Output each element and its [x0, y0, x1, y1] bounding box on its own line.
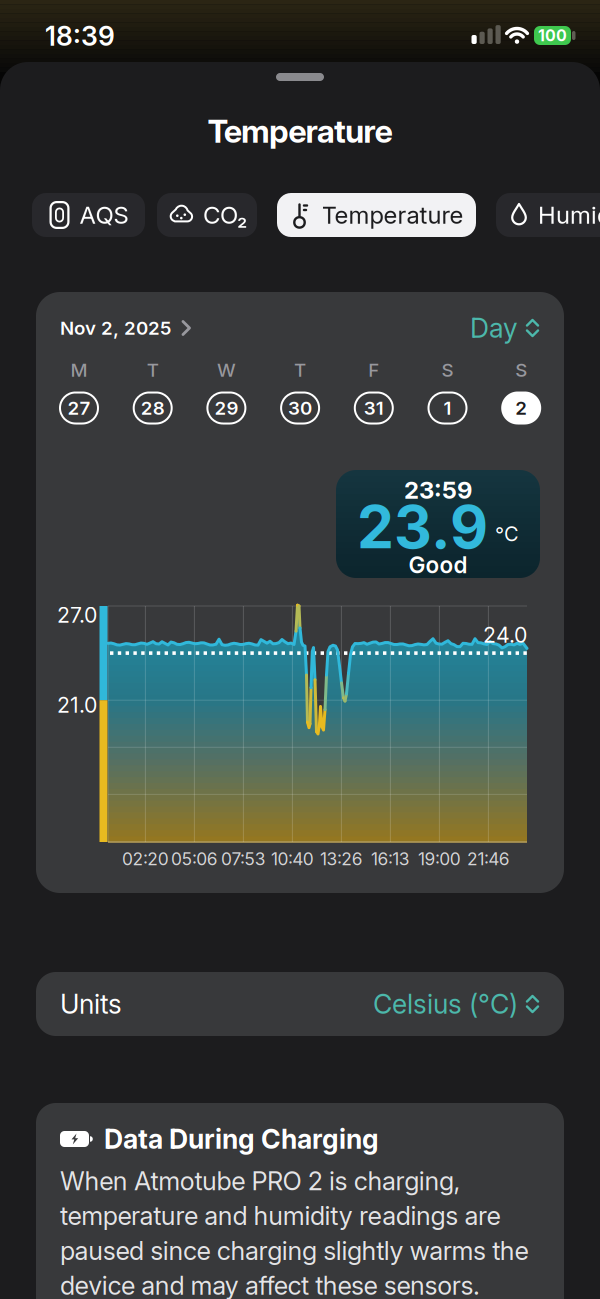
- staticText: 13:26: [320, 849, 363, 869]
- button[interactable]: AQS: [32, 193, 145, 237]
- button[interactable]: Nov 2, 2025: [60, 308, 192, 348]
- staticText: temperature and humidity readings are: [60, 1201, 501, 1231]
- staticText: T: [294, 359, 306, 381]
- staticText: 19:00: [418, 849, 461, 869]
- staticText: When Atmotube PRO 2 is charging,: [60, 1166, 461, 1196]
- staticText: 23:59: [404, 476, 472, 504]
- staticText: T: [147, 359, 159, 381]
- staticText: 10:40: [271, 849, 314, 869]
- staticText: paused since charging slightly warms the: [60, 1236, 528, 1266]
- staticText: 02:20: [122, 849, 169, 869]
- staticText: 29: [214, 397, 238, 419]
- staticText: 30: [288, 397, 312, 419]
- staticText: Nov 2, 2025: [60, 317, 171, 339]
- staticText: Day: [470, 312, 518, 344]
- staticText: 24.0: [483, 622, 527, 648]
- staticText: 27: [67, 397, 90, 419]
- staticText: 23.9: [357, 492, 488, 562]
- staticText: Good: [408, 552, 467, 578]
- staticText: 1: [443, 397, 451, 419]
- staticText: °C: [495, 522, 519, 546]
- staticText: M: [70, 359, 87, 381]
- button[interactable]: Temperature: [277, 193, 476, 237]
- staticText: device and may affect these sensors.: [60, 1271, 480, 1299]
- staticText: 27.0: [57, 602, 97, 628]
- button[interactable]: CO₂: [157, 193, 257, 237]
- staticText: Humidity: [538, 201, 600, 229]
- button[interactable]: 2: [499, 388, 543, 428]
- button[interactable]: Day: [420, 308, 540, 348]
- staticText: 31: [364, 397, 384, 419]
- button[interactable]: 30: [278, 388, 322, 428]
- staticText: 21.0: [57, 692, 97, 718]
- staticText: 05:06: [171, 849, 218, 869]
- staticText: CO₂: [203, 201, 247, 229]
- staticText: Celsius (°C): [373, 988, 518, 1020]
- staticText: S: [441, 359, 453, 381]
- staticText: 100: [538, 26, 567, 45]
- staticText: 07:53: [221, 849, 266, 869]
- staticText: 2: [515, 397, 527, 419]
- button[interactable]: Humidity: [496, 193, 600, 237]
- button[interactable]: 29: [204, 388, 248, 428]
- button[interactable]: 27: [57, 388, 101, 428]
- staticText: Data During Charging: [104, 1123, 379, 1155]
- staticText: 18:39: [45, 20, 115, 52]
- staticText: 16:13: [371, 849, 410, 869]
- staticText: S: [515, 359, 527, 381]
- staticText: W: [217, 359, 236, 381]
- staticText: Temperature: [321, 201, 463, 229]
- staticText: Temperature: [207, 112, 392, 150]
- staticText: Units: [60, 988, 122, 1020]
- button[interactable]: 28: [131, 388, 175, 428]
- button[interactable]: 1: [425, 388, 469, 428]
- button[interactable]: 31: [352, 388, 396, 428]
- staticText: AQS: [79, 201, 128, 229]
- button[interactable]: Units: [36, 972, 564, 1036]
- staticText: F: [368, 359, 379, 381]
- staticText: 21:46: [467, 849, 510, 869]
- staticText: 28: [141, 397, 165, 419]
